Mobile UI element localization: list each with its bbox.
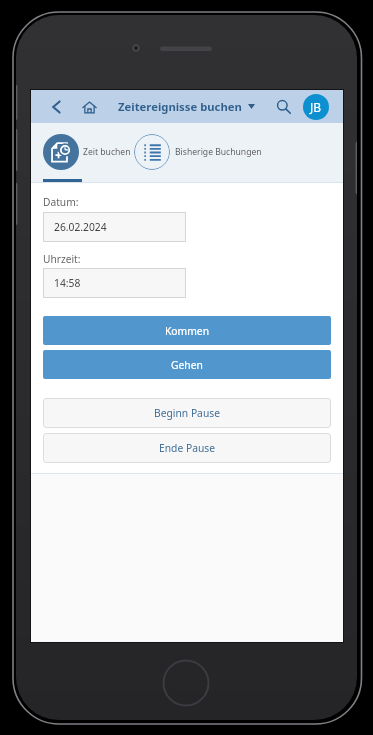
staticText: Datum: [43,195,79,209]
button[interactable]: Kommen [43,316,331,345]
button[interactable]: Back [46,97,66,117]
staticText: Uhrzeit: [43,252,81,266]
staticText: Zeit buchen [83,146,131,158]
button[interactable]: JB [303,94,329,120]
button[interactable]: Ende Pause [43,433,331,463]
button[interactable]: Home [79,97,99,117]
button[interactable]: 14:58 [43,268,186,298]
button[interactable]: Bisherige Buchungen [134,134,262,170]
staticText: Ende Pause [159,441,216,455]
staticText: Zeitereignisse buchen [118,99,242,114]
staticText: Kommen [165,324,210,338]
button[interactable]: 26.02.2024 [43,212,186,242]
button[interactable]: Gehen [43,350,331,379]
button[interactable]: Beginn Pause [43,398,331,428]
staticText: 14:58 [54,276,81,290]
staticText: Gehen [171,358,203,372]
staticText: Bisherige Buchungen [175,146,262,158]
staticText: JB [310,99,322,115]
staticText: Beginn Pause [154,406,221,420]
button[interactable]: Zeitereignisse buchen [118,90,274,123]
button[interactable]: Search [274,97,294,117]
staticText: 26.02.2024 [54,220,107,234]
button[interactable]: Zeit buchen [43,134,131,170]
